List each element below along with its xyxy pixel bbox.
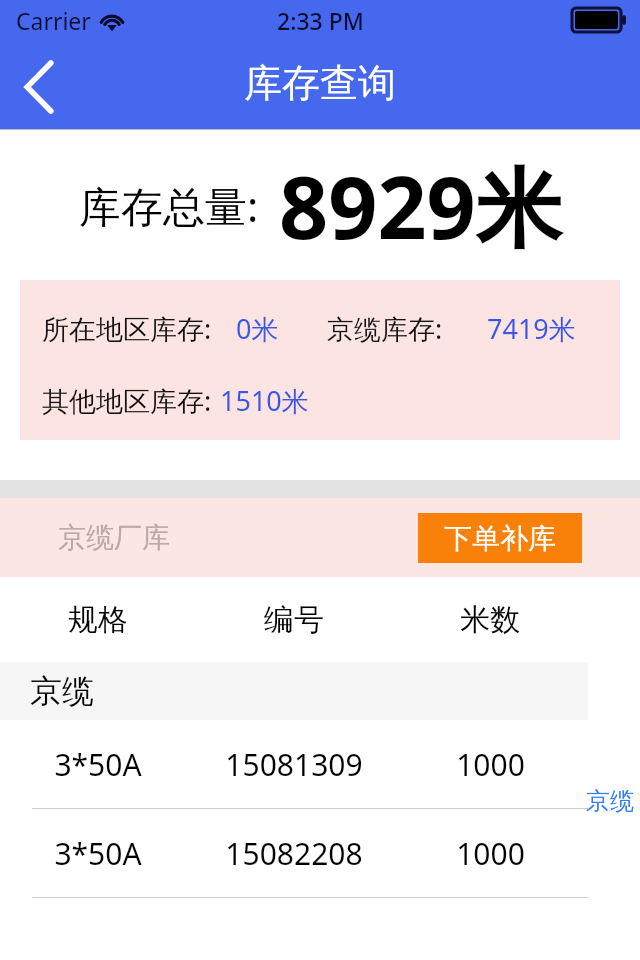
- button[interactable]: 京缆: [0, 662, 588, 720]
- staticText: 所在地区库存:: [42, 310, 212, 347]
- staticText: 库存总量:: [79, 177, 259, 234]
- staticText: 3*50A: [54, 833, 142, 874]
- staticText: 下单补库: [444, 521, 556, 556]
- button[interactable]: 3*50A: [0, 809, 640, 898]
- staticText: 规格: [68, 601, 128, 639]
- staticText: 2:33 PM: [277, 5, 364, 36]
- staticText: 库存查询: [244, 59, 396, 107]
- staticText: 编号: [264, 601, 324, 639]
- staticText: 京缆库存:: [327, 310, 443, 347]
- staticText: 0米: [236, 310, 279, 347]
- staticText: Carrier: [16, 5, 91, 36]
- staticText: 8929米: [279, 147, 562, 264]
- staticText: 1000: [456, 744, 525, 785]
- button[interactable]: Back: [0, 49, 80, 125]
- button[interactable]: 京缆: [586, 786, 634, 816]
- staticText: 3*50A: [54, 744, 142, 785]
- button[interactable]: 3*50A: [0, 720, 640, 809]
- staticText: 1510米: [220, 382, 309, 419]
- staticText: 15081309: [225, 744, 363, 785]
- staticText: 京缆: [30, 671, 94, 711]
- staticText: 15082208: [225, 833, 363, 874]
- staticText: 米数: [460, 601, 520, 639]
- button[interactable]: 京缆厂库: [58, 520, 170, 555]
- button[interactable]: 下单补库: [418, 513, 582, 563]
- staticText: 1000: [456, 833, 525, 874]
- staticText: 其他地区库存:: [42, 382, 212, 419]
- staticText: 7419米: [487, 310, 576, 347]
